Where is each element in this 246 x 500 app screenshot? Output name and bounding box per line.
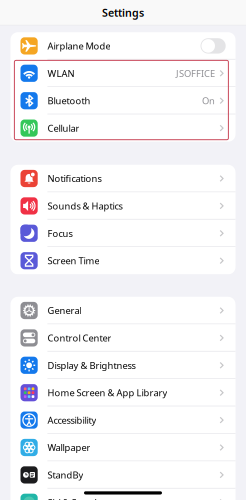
staticText: Home Screen & App Library [47, 386, 167, 399]
staticText: Screen Time [47, 254, 99, 267]
staticText: Wallpaper [47, 441, 90, 454]
staticText: General [47, 304, 81, 317]
button[interactable]: Control Center [10, 324, 235, 352]
staticText: JSOFFICE [176, 67, 215, 79]
button[interactable]: Notifications [10, 165, 235, 192]
button[interactable]: Display & Brightness [10, 352, 235, 379]
button[interactable]: Sounds & Haptics [10, 192, 235, 220]
staticText: Accessibility [47, 414, 96, 426]
staticText: Settings [102, 6, 144, 20]
staticText: Siri & Search [47, 496, 100, 500]
button[interactable]: StandBy [10, 461, 235, 489]
button[interactable]: Bluetooth [10, 87, 235, 114]
staticText: StandBy [47, 469, 83, 481]
button[interactable]: Airplane Mode [10, 32, 235, 60]
button[interactable]: Screen Time [10, 247, 235, 274]
staticText: Control Center [47, 332, 111, 344]
button[interactable]: Accessibility [10, 406, 235, 434]
staticText: Focus [47, 227, 72, 239]
button[interactable]: Siri & Search [10, 489, 235, 500]
button[interactable]: Home Screen & App Library [10, 379, 235, 406]
staticText: Airplane Mode [47, 40, 110, 52]
button[interactable]: WLAN [10, 60, 235, 87]
button[interactable]: Focus [10, 220, 235, 247]
button[interactable]: Settings [102, 6, 144, 20]
staticText: Sounds & Haptics [47, 200, 122, 212]
staticText: Display & Brightness [47, 359, 135, 371]
button[interactable]: Wallpaper [10, 434, 235, 461]
staticText: Bluetooth [47, 94, 90, 107]
staticText: Notifications [47, 172, 101, 185]
button[interactable]: Cellular [10, 114, 235, 142]
staticText: Cellular [47, 122, 79, 134]
staticText: WLAN [47, 67, 74, 79]
button[interactable]: General [10, 297, 235, 324]
staticText: On [202, 94, 215, 107]
